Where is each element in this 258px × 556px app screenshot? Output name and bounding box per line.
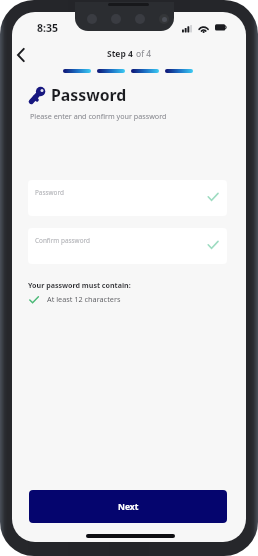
staticText: Please enter and confirm your password: [30, 111, 167, 121]
staticText: of 4: [136, 48, 152, 60]
staticText: 8:35: [37, 21, 58, 35]
button[interactable]: Next: [29, 490, 227, 523]
staticText: Password: [51, 84, 127, 106]
staticText: Next: [118, 501, 139, 513]
staticText: Confirm password: [35, 236, 90, 245]
button[interactable]: Password: [28, 180, 227, 216]
button[interactable]: Confirm password: [28, 228, 227, 264]
staticText: Your password must contain:: [28, 280, 131, 290]
staticText: At least 12 characters: [47, 294, 121, 304]
staticText: Step 4: [107, 48, 136, 60]
staticText: Password: [35, 188, 64, 197]
button[interactable]: Back: [12, 43, 33, 67]
